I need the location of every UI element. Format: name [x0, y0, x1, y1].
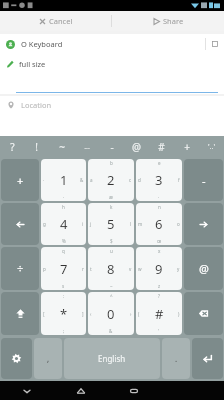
staticText: #: [155, 305, 164, 323]
staticText: $: [110, 238, 113, 244]
button[interactable]: Recent apps: [107, 381, 160, 400]
button[interactable]: +: [174, 136, 199, 158]
staticText: [: [43, 311, 45, 317]
button[interactable]: Minus: [184, 159, 223, 201]
staticText: !: [35, 140, 38, 154]
button[interactable]: #: [136, 292, 182, 335]
button[interactable]: 2: [88, 159, 134, 201]
staticText: g: [43, 221, 46, 227]
button[interactable]: 8: [88, 247, 134, 290]
staticText: l: [130, 221, 132, 227]
staticText: ·: [158, 194, 160, 200]
button[interactable]: '..': [199, 136, 224, 158]
staticText: y: [177, 266, 180, 272]
button[interactable]: More options: [206, 34, 224, 54]
staticText: 2: [107, 171, 115, 189]
button[interactable]: ...: [74, 136, 99, 158]
staticText: ]: [82, 311, 84, 317]
button[interactable]: Settings: [1, 338, 32, 379]
button[interactable]: @: [124, 136, 149, 158]
staticText: %: [62, 238, 66, 244]
button[interactable]: ~: [49, 136, 74, 158]
staticText: Cancel: [49, 16, 73, 26]
staticText: English: [98, 353, 126, 364]
button[interactable]: !: [24, 136, 49, 158]
staticText: O Keyboard: [21, 39, 63, 49]
staticText: p: [43, 266, 46, 272]
button[interactable]: 3: [136, 159, 182, 201]
button[interactable]: O Keyboard: [0, 34, 224, 54]
button[interactable]: Plus: [1, 159, 39, 201]
staticText: z: [158, 283, 161, 289]
staticText: &: [80, 177, 84, 183]
button[interactable]: #: [149, 136, 174, 158]
button[interactable]: 9: [136, 247, 182, 290]
button[interactable]: Home: [54, 381, 107, 400]
button[interactable]: 6: [136, 203, 182, 245]
staticText: Share: [163, 16, 184, 26]
staticText: ~: [59, 140, 65, 154]
button[interactable]: Location: [0, 96, 224, 114]
button[interactable]: full size: [0, 54, 224, 94]
button[interactable]: Move right: [184, 203, 223, 245]
staticText: full size: [19, 59, 46, 69]
staticText: ;: [63, 328, 65, 334]
button[interactable]: Share: [112, 11, 224, 31]
staticText: s: [62, 283, 65, 289]
staticText: 5: [107, 215, 115, 233]
staticText: ~: [110, 283, 113, 289]
staticText: ': [158, 328, 160, 334]
staticText: @: [199, 261, 209, 276]
button[interactable]: Backspace: [184, 292, 223, 335]
staticText: j: [90, 221, 92, 227]
button[interactable]: -: [99, 136, 124, 158]
staticText: +: [17, 173, 24, 188]
button[interactable]: Move left: [1, 203, 39, 245]
button[interactable]: Divide: [1, 247, 39, 290]
staticText: :: [63, 293, 65, 299]
button[interactable]: 4: [41, 203, 86, 245]
staticText: &: [109, 328, 113, 334]
button[interactable]: Enter: [192, 338, 223, 379]
button[interactable]: *: [41, 292, 86, 335]
staticText: e: [158, 160, 161, 166]
button[interactable]: 7: [41, 247, 86, 290]
staticText: ?: [10, 140, 15, 154]
staticText: ^: [110, 293, 113, 299]
button[interactable]: Cancel: [0, 11, 111, 31]
staticText: b: [110, 160, 113, 166]
staticText: Location: [21, 100, 52, 110]
button[interactable]: Hide keyboard: [0, 381, 54, 400]
staticText: æ: [109, 194, 113, 200]
staticText: o: [177, 221, 180, 227]
staticText: 0: [107, 305, 115, 323]
button[interactable]: 0: [88, 292, 134, 335]
staticText: œ: [157, 238, 162, 244]
staticText: f: [178, 177, 180, 183]
staticText: v: [129, 266, 132, 272]
staticText: ...: [84, 142, 90, 152]
staticText: ÷: [17, 261, 24, 276]
staticText: 6: [155, 215, 163, 233]
staticText: 9: [155, 260, 163, 278]
staticText: ?: [158, 293, 160, 299]
button[interactable]: English: [64, 338, 160, 379]
staticText: i: [82, 221, 84, 227]
staticText: ·: [63, 194, 65, 200]
staticText: 7: [60, 260, 68, 278]
button[interactable]: At sign: [184, 247, 223, 290]
staticText: m: [138, 221, 143, 227]
button[interactable]: Shift: [1, 292, 39, 335]
button[interactable]: 1: [41, 159, 86, 201]
staticText: '..': [208, 142, 215, 152]
staticText: r: [82, 266, 84, 272]
staticText: 1: [60, 171, 68, 189]
button[interactable]: ?: [0, 136, 24, 158]
staticText: ): [178, 311, 180, 317]
staticText: h: [62, 204, 65, 210]
button[interactable]: 5: [88, 203, 134, 245]
staticText: k: [110, 204, 113, 210]
staticText: x: [158, 248, 161, 254]
